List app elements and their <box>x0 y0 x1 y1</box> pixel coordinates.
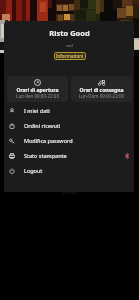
staticText: Orari di consegna <box>71 87 132 94</box>
other: Bluetooth <box>124 153 130 159</box>
staticText: Orari di apertura <box>7 87 68 94</box>
button[interactable]: Ordini ricevuti <box>0 118 139 133</box>
staticText: Ordini ricevuti <box>24 122 61 129</box>
button[interactable]: Orari di consegna <box>71 76 132 102</box>
staticText: Modifica password <box>24 137 73 144</box>
staticText: Informazioni <box>56 53 84 59</box>
staticText: Stato stampante <box>24 152 67 159</box>
button[interactable]: Logout <box>0 163 139 178</box>
button[interactable]: Stato stampante <box>0 148 139 163</box>
button[interactable]: Informazioni <box>54 52 86 60</box>
staticText: Logout <box>24 167 43 174</box>
staticText: v.0.0.26 <box>0 190 139 195</box>
button[interactable]: Modifica password <box>0 133 139 148</box>
button[interactable]: I miei dati <box>0 103 139 118</box>
button[interactable]: Orari di apertura <box>7 76 68 102</box>
staticText: Lun-Dom 09:00-22:00 <box>71 93 132 99</box>
staticText: I miei dati <box>24 107 50 114</box>
staticText: Lun-Ven 09:00-22:00 <box>7 93 68 99</box>
staticText: ced <box>0 43 139 48</box>
staticText: Risto Good <box>0 28 139 38</box>
